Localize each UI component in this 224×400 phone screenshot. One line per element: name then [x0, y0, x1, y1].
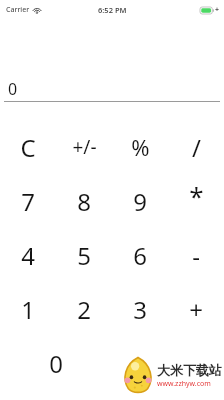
staticText: 3 — [133, 293, 147, 326]
button[interactable]: % — [112, 120, 168, 174]
button[interactable]: 0 — [0, 336, 112, 390]
staticText: 8 — [77, 185, 91, 218]
staticText: + — [215, 5, 220, 15]
staticText: www.zzhyw.com — [157, 379, 211, 389]
staticText: 4 — [21, 239, 35, 272]
button[interactable]: + — [168, 282, 224, 336]
staticText: * — [189, 178, 204, 213]
staticText: 0 — [8, 78, 18, 100]
button[interactable]: 4 — [0, 228, 56, 282]
button[interactable]: +/- — [56, 120, 112, 174]
staticText: C — [20, 131, 36, 164]
staticText: 7 — [21, 185, 35, 218]
staticText: 大米下载站 — [157, 362, 222, 378]
button[interactable]: 6 — [112, 228, 168, 282]
staticText: 9 — [133, 185, 147, 218]
staticText: / — [192, 131, 201, 164]
staticText: +/- — [72, 134, 97, 160]
staticText: Carrier — [6, 5, 30, 15]
staticText: 5 — [77, 239, 91, 272]
button[interactable]: 9 — [112, 174, 168, 228]
staticText: + — [189, 293, 203, 326]
staticText: 0 — [49, 347, 63, 380]
staticText: % — [131, 132, 150, 162]
button[interactable]: 2 — [56, 282, 112, 336]
staticText: 6:52 PM — [98, 5, 127, 15]
staticText: 2 — [77, 293, 91, 326]
staticText: 1 — [21, 293, 35, 326]
button[interactable]: 8 — [56, 174, 112, 228]
button[interactable]: - — [168, 228, 224, 282]
button[interactable]: * — [168, 174, 224, 228]
staticText: - — [192, 239, 200, 272]
button[interactable]: C — [0, 120, 56, 174]
button[interactable]: / — [168, 120, 224, 174]
staticText: 6 — [133, 239, 147, 272]
button[interactable]: 3 — [112, 282, 168, 336]
button[interactable]: 1 — [0, 282, 56, 336]
button[interactable]: 7 — [0, 174, 56, 228]
button[interactable]: 5 — [56, 228, 112, 282]
